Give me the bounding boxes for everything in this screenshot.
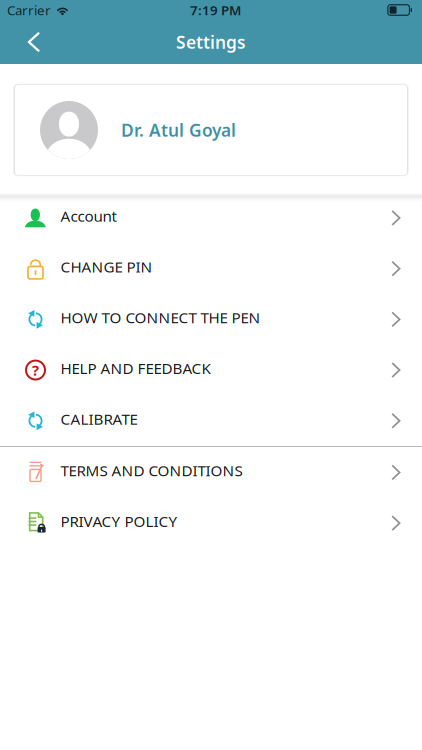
- staticText: Carrier: [7, 1, 51, 19]
- button[interactable]: Dr. Atul Goyal: [0, 85, 422, 175]
- button[interactable]: Account: [0, 193, 422, 243]
- button[interactable]: CHANGE PIN: [0, 243, 422, 294]
- staticText: Account: [60, 206, 116, 226]
- staticText: TERMS AND CONDITIONS: [60, 460, 242, 481]
- staticText: HELP AND FEEDBACK: [60, 358, 210, 378]
- button[interactable]: PRIVACY POLICY: [0, 498, 422, 548]
- staticText: Settings: [176, 30, 246, 53]
- button[interactable]: Back: [0, 20, 50, 64]
- staticText: 7:19 PM: [190, 1, 241, 19]
- button[interactable]: ?: [0, 345, 422, 395]
- button[interactable]: TERMS AND CONDITIONS: [0, 447, 422, 498]
- button[interactable]: CALIBRATE: [0, 395, 422, 446]
- staticText: PRIVACY POLICY: [60, 511, 177, 531]
- staticText: HOW TO CONNECT THE PEN: [60, 307, 260, 328]
- staticText: CHANGE PIN: [60, 256, 152, 277]
- staticText: CALIBRATE: [60, 408, 137, 429]
- staticText: Dr. Atul Goyal: [121, 118, 236, 141]
- staticText: ?: [32, 360, 39, 380]
- button[interactable]: HOW TO CONNECT THE PEN: [0, 294, 422, 345]
